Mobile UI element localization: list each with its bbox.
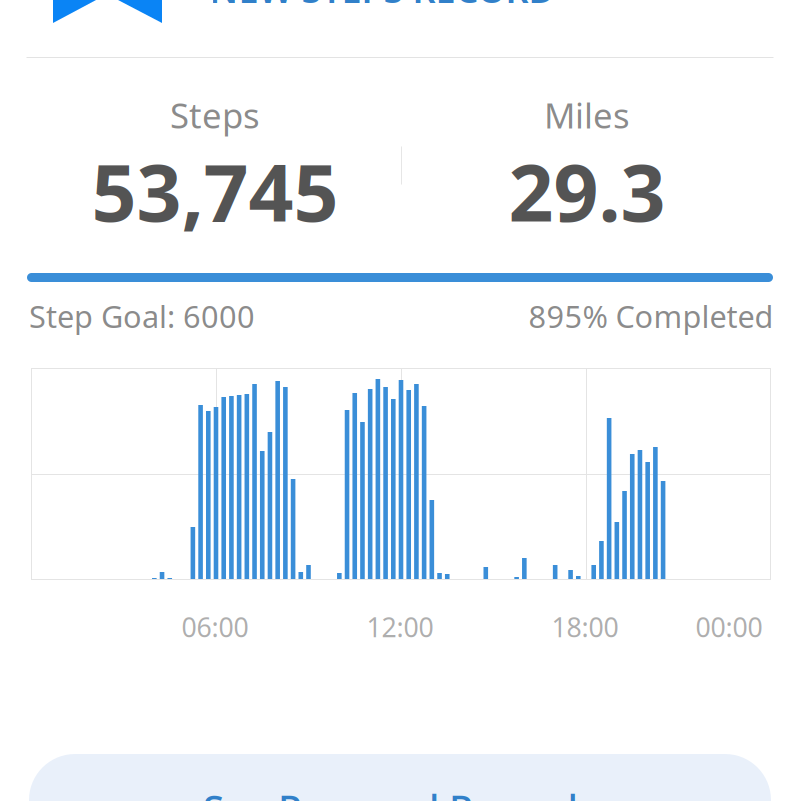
staticText: 00:00: [695, 609, 762, 645]
button[interactable]: See Personal Records: [29, 754, 771, 801]
staticText: Miles: [544, 92, 630, 138]
staticText: 06:00: [181, 609, 248, 645]
staticText: See Personal Records: [203, 782, 597, 801]
staticText: 18:00: [551, 609, 618, 645]
staticText: Step Goal: 6000: [29, 296, 255, 336]
staticText: 12:00: [366, 609, 433, 645]
staticText: Steps: [170, 92, 260, 138]
staticText: 895% Completed: [528, 296, 773, 336]
staticText: 53,745: [91, 139, 338, 243]
staticText: NEW STEPS RECORD: [209, 0, 554, 13]
staticText: 29.3: [508, 139, 665, 243]
